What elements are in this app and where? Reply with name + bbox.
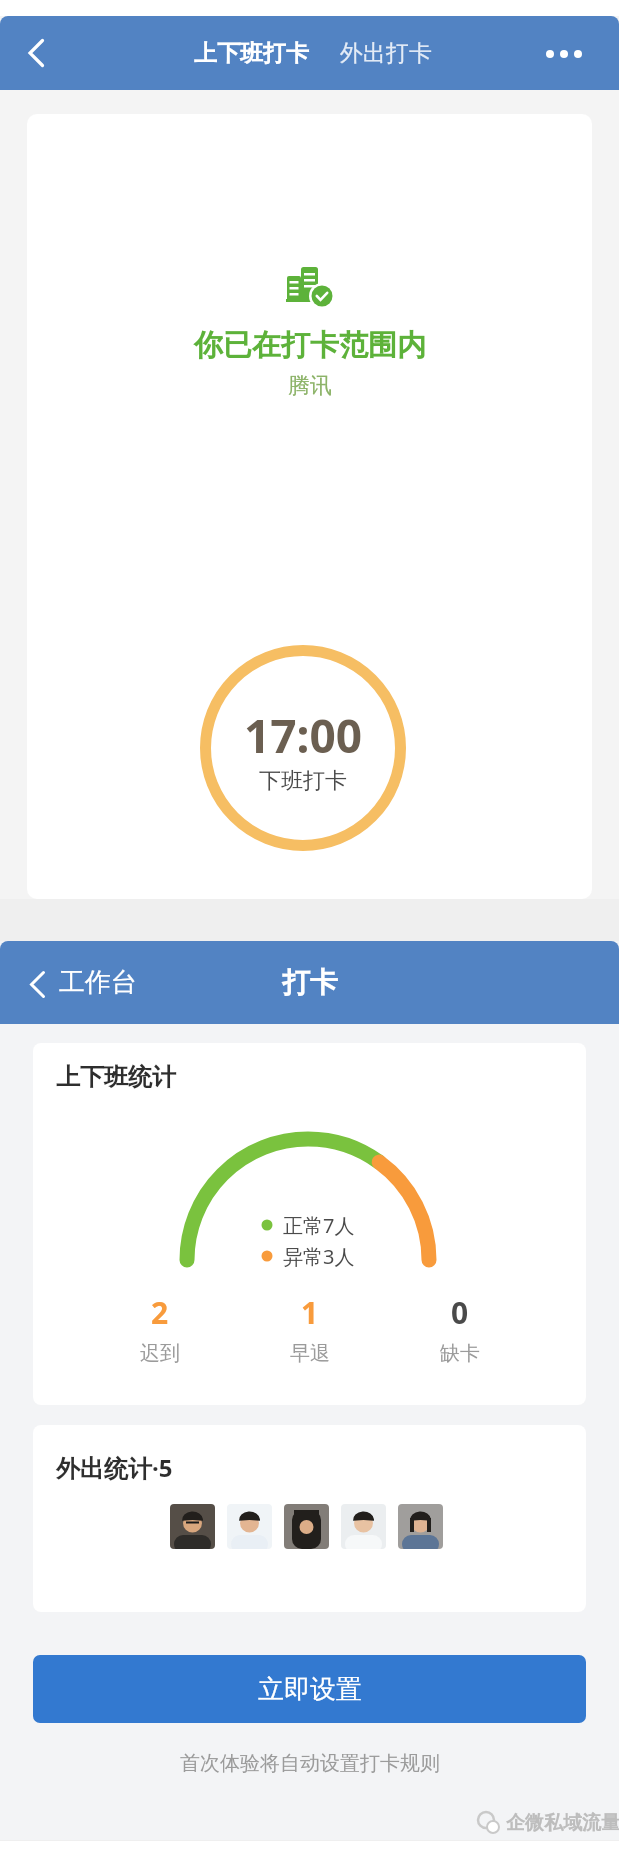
staticText: 腾讯 bbox=[288, 372, 332, 400]
staticText: 异常3人 bbox=[283, 1243, 355, 1270]
staticText: 17:00 bbox=[244, 704, 363, 764]
staticText: 外出统计·5 bbox=[56, 1451, 173, 1484]
staticText: 打卡 bbox=[282, 965, 338, 1000]
staticText: 外出打卡 bbox=[340, 39, 432, 68]
staticText: 工作台 bbox=[59, 966, 137, 999]
staticText: 上下班统计 bbox=[56, 1062, 176, 1092]
staticText: 企微私域流量 bbox=[506, 1811, 619, 1835]
staticText: 早退 bbox=[290, 1341, 330, 1366]
staticText: 立即设置 bbox=[258, 1673, 362, 1706]
staticText: 上下班打卡 bbox=[194, 39, 309, 68]
staticText: 2 bbox=[151, 1292, 169, 1330]
staticText: 0 bbox=[451, 1292, 469, 1330]
staticText: 缺卡 bbox=[440, 1341, 480, 1366]
staticText: 1 bbox=[301, 1292, 319, 1330]
staticText: 下班打卡 bbox=[259, 767, 347, 795]
staticText: 迟到 bbox=[140, 1341, 180, 1366]
staticText: 首次体验将自动设置打卡规则 bbox=[180, 1751, 440, 1776]
staticText: 正常7人 bbox=[283, 1212, 355, 1239]
staticText: 你已在打卡范围内 bbox=[194, 327, 426, 364]
